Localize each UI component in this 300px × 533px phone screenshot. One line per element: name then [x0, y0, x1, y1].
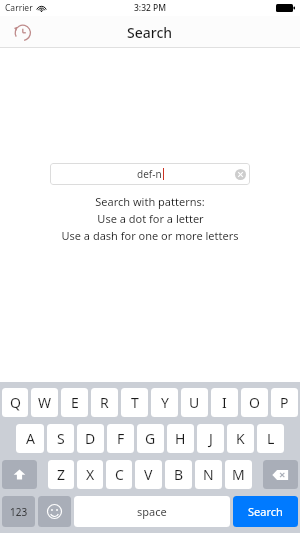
button[interactable]: O [241, 388, 268, 417]
staticText: space [137, 504, 167, 519]
staticText: X [86, 465, 95, 484]
button[interactable]: T [121, 388, 148, 417]
staticText: Search [127, 23, 173, 42]
button[interactable]: J [197, 424, 224, 453]
staticText: G [145, 429, 156, 448]
button[interactable]: Clear text [235, 169, 246, 180]
button[interactable]: def-n [50, 163, 250, 185]
staticText: Y [161, 393, 169, 412]
button[interactable]: K [227, 424, 254, 453]
staticText: E [71, 393, 79, 412]
button[interactable]: Z [48, 460, 74, 489]
button[interactable]: X [77, 460, 103, 489]
staticText: D [85, 429, 96, 448]
button[interactable]: Backspace [263, 460, 298, 489]
button[interactable]: 123 [2, 496, 35, 527]
staticText: Search with patterns: [95, 194, 205, 209]
staticText: 123 [10, 505, 28, 519]
staticText: Q [10, 393, 21, 412]
button[interactable]: S [47, 424, 74, 453]
button[interactable]: D [77, 424, 104, 453]
button[interactable]: Q [2, 388, 28, 417]
button[interactable]: space [74, 496, 230, 527]
staticText: W [38, 393, 52, 412]
staticText: T [131, 393, 139, 412]
button[interactable]: Shift [2, 460, 37, 489]
button[interactable]: F [107, 424, 134, 453]
button[interactable]: G [137, 424, 164, 453]
button[interactable]: I [211, 388, 238, 417]
staticText: N [203, 465, 214, 484]
staticText: K [236, 429, 245, 448]
button[interactable]: E [61, 388, 88, 417]
staticText: 3:32 PM [134, 2, 167, 14]
button[interactable]: A [16, 424, 44, 453]
button[interactable]: U [181, 388, 208, 417]
staticText: Carrier [5, 2, 33, 14]
button[interactable]: L [257, 424, 284, 453]
staticText: Use a dot for a letter [97, 211, 204, 226]
staticText: B [174, 465, 184, 484]
button[interactable]: N [195, 460, 222, 489]
button[interactable]: V [135, 460, 162, 489]
staticText: U [189, 393, 200, 412]
staticText: I [222, 393, 227, 412]
staticText: C [115, 465, 124, 484]
button[interactable]: History [8, 18, 36, 46]
staticText: S [57, 429, 65, 448]
button[interactable]: H [167, 424, 194, 453]
button[interactable]: M [225, 460, 252, 489]
staticText: A [26, 429, 35, 448]
staticText: V [144, 465, 153, 484]
staticText: Z [57, 465, 66, 484]
staticText: H [175, 429, 186, 448]
staticText: Search [248, 504, 283, 519]
staticText: def-n [137, 167, 162, 181]
staticText: F [117, 429, 125, 448]
staticText: M [232, 465, 245, 484]
button[interactable]: R [91, 388, 118, 417]
button[interactable]: Y [151, 388, 178, 417]
button[interactable]: Emoji [38, 496, 71, 527]
staticText: Use a dash for one or more letters [61, 228, 239, 243]
button[interactable]: Search [233, 496, 298, 527]
staticText: R [100, 393, 109, 412]
button[interactable]: P [271, 388, 298, 417]
button[interactable]: B [165, 460, 192, 489]
button[interactable]: W [31, 388, 58, 417]
staticText: P [280, 393, 289, 412]
staticText: J [209, 429, 213, 448]
button[interactable]: C [106, 460, 132, 489]
staticText: O [249, 393, 260, 412]
staticText: L [267, 429, 275, 448]
